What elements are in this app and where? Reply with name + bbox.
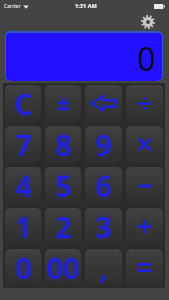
staticText: 1 (15, 208, 32, 244)
button[interactable]: Divide (126, 85, 163, 122)
button[interactable]: Equals (126, 249, 163, 286)
button[interactable]: 3 (85, 208, 122, 245)
other: Minus (139, 180, 151, 192)
staticText: 9 (95, 126, 112, 162)
staticText: 5 (55, 167, 72, 203)
button[interactable]: 9 (85, 126, 122, 163)
staticText: C (14, 85, 33, 121)
staticText: 8 (55, 126, 72, 162)
staticText: 0 (137, 37, 156, 81)
other: Equals (138, 263, 151, 272)
button[interactable]: 5 (45, 167, 81, 204)
button[interactable]: 6 (85, 167, 122, 204)
button[interactable]: 1 (5, 208, 41, 245)
button[interactable]: Settings (139, 13, 157, 31)
staticText: 1:31 AM (75, 2, 97, 10)
button[interactable]: C (5, 85, 41, 122)
staticText: 00 (46, 249, 80, 285)
button[interactable]: Plus (126, 208, 163, 245)
staticText: 2 (55, 208, 72, 244)
staticText: 0 (15, 249, 32, 285)
staticText: 6 (95, 167, 112, 203)
other: Divide (138, 97, 151, 110)
button[interactable]: 2 (45, 208, 81, 245)
button[interactable]: 7 (5, 126, 41, 163)
button[interactable]: , (85, 249, 122, 286)
other: Plus (138, 220, 151, 233)
staticText: 4 (15, 167, 32, 203)
button[interactable]: 8 (45, 126, 81, 163)
other: Backspace (90, 95, 117, 112)
button[interactable]: Sign (45, 85, 81, 122)
button[interactable]: Minus (126, 167, 163, 204)
staticText: 3 (95, 208, 112, 244)
button[interactable]: 4 (5, 167, 41, 204)
staticText: 7 (15, 126, 32, 162)
button[interactable]: Backspace (85, 85, 122, 122)
button[interactable]: Multiply (126, 126, 163, 163)
other: Multiply (138, 138, 151, 151)
button[interactable]: 0 (5, 249, 41, 286)
other: Sign (58, 98, 69, 110)
button[interactable]: 0 (6, 33, 162, 81)
staticText: Carrier (4, 3, 21, 10)
button[interactable]: 00 (45, 249, 81, 286)
staticText: , (99, 249, 108, 285)
